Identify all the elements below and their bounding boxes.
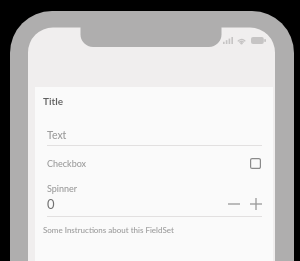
button[interactable]: Decrement	[228, 198, 240, 210]
staticText: Text	[47, 129, 67, 142]
staticText: Spinner	[47, 183, 78, 194]
button[interactable]: Checkbox	[35, 154, 273, 173]
staticText: 0	[47, 196, 55, 212]
staticText: Some Instructions about this FieldSet	[43, 225, 174, 235]
staticText: Checkbox	[47, 158, 87, 169]
staticText: Title	[43, 95, 64, 107]
button[interactable]: Increment	[250, 198, 262, 210]
